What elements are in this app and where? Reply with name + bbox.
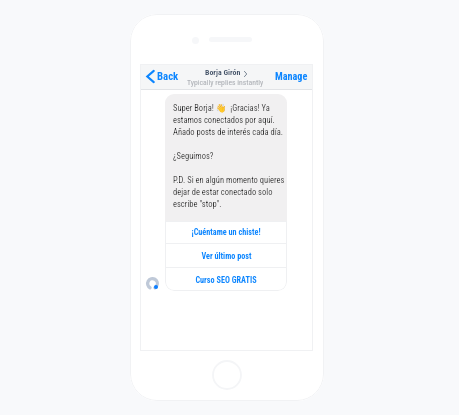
staticText: Typically replies instantly <box>187 78 264 87</box>
button[interactable]: Ver último post <box>165 244 287 267</box>
staticText: ¡Cuéntame un chiste! <box>191 227 261 237</box>
staticText: Super Borja! 👋 ¡Gracias! Ya estamos cone… <box>173 103 285 209</box>
staticText: Curso SEO GRATIS <box>195 275 257 285</box>
staticText: Back <box>157 70 179 83</box>
staticText: Ver último post <box>201 251 252 261</box>
button[interactable]: ¡Cuéntame un chiste! <box>165 221 287 243</box>
button[interactable]: Manage <box>275 71 308 83</box>
staticText: Manage <box>275 71 308 83</box>
button[interactable]: Curso SEO GRATIS <box>165 268 287 291</box>
button[interactable]: Borja Girón <box>205 68 247 77</box>
staticText: Borja Girón <box>205 68 241 77</box>
other: Open profile <box>244 71 247 77</box>
button[interactable]: Back <box>146 70 179 83</box>
button[interactable]: Borja Girón profile, online <box>146 277 159 290</box>
